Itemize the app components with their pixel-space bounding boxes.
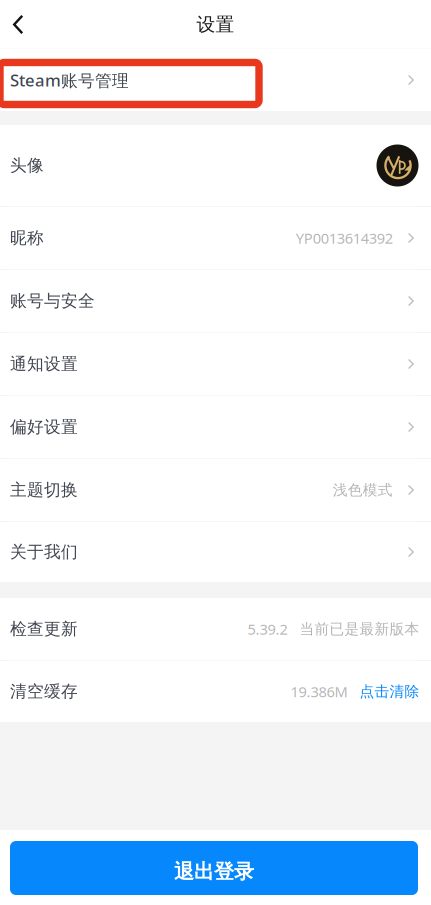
button[interactable]: Back [0, 0, 37, 49]
staticText: 点击清除 [359, 682, 419, 701]
button[interactable]: 通知设置 [0, 333, 431, 395]
staticText: 昵称 [10, 227, 44, 248]
button[interactable]: 昵称 [0, 207, 431, 269]
staticText: 5.39.2 [247, 619, 287, 639]
button[interactable]: 检查更新 [0, 598, 431, 660]
button[interactable]: 头像 [0, 125, 431, 206]
staticText: 偏好设置 [10, 416, 78, 437]
staticText: 关于我们 [10, 541, 78, 562]
staticText: 19.386M [290, 681, 347, 701]
button[interactable]: 退出登录 [10, 841, 418, 895]
staticText: 检查更新 [10, 618, 78, 639]
staticText: 当前已是最新版本 [299, 620, 419, 638]
staticText: YP0013614392 [296, 228, 393, 248]
button[interactable]: 主题切换 [0, 459, 431, 521]
staticText: 清空缓存 [10, 681, 78, 702]
staticText: 通知设置 [10, 353, 78, 374]
button[interactable]: Steam账号管理 [0, 49, 431, 111]
button[interactable]: 关于我们 [0, 522, 431, 582]
button[interactable]: 清空缓存 [0, 661, 431, 722]
staticText: 账号与安全 [10, 290, 95, 311]
staticText: 浅色模式 [333, 481, 393, 499]
staticText: 头像 [10, 155, 44, 176]
staticText: 设置 [196, 13, 234, 36]
staticText: Steam账号管理 [10, 69, 129, 91]
button[interactable]: 偏好设置 [0, 396, 431, 458]
button[interactable]: 账号与安全 [0, 270, 431, 332]
staticText: 退出登录 [174, 859, 254, 884]
staticText: 主题切换 [10, 479, 78, 500]
